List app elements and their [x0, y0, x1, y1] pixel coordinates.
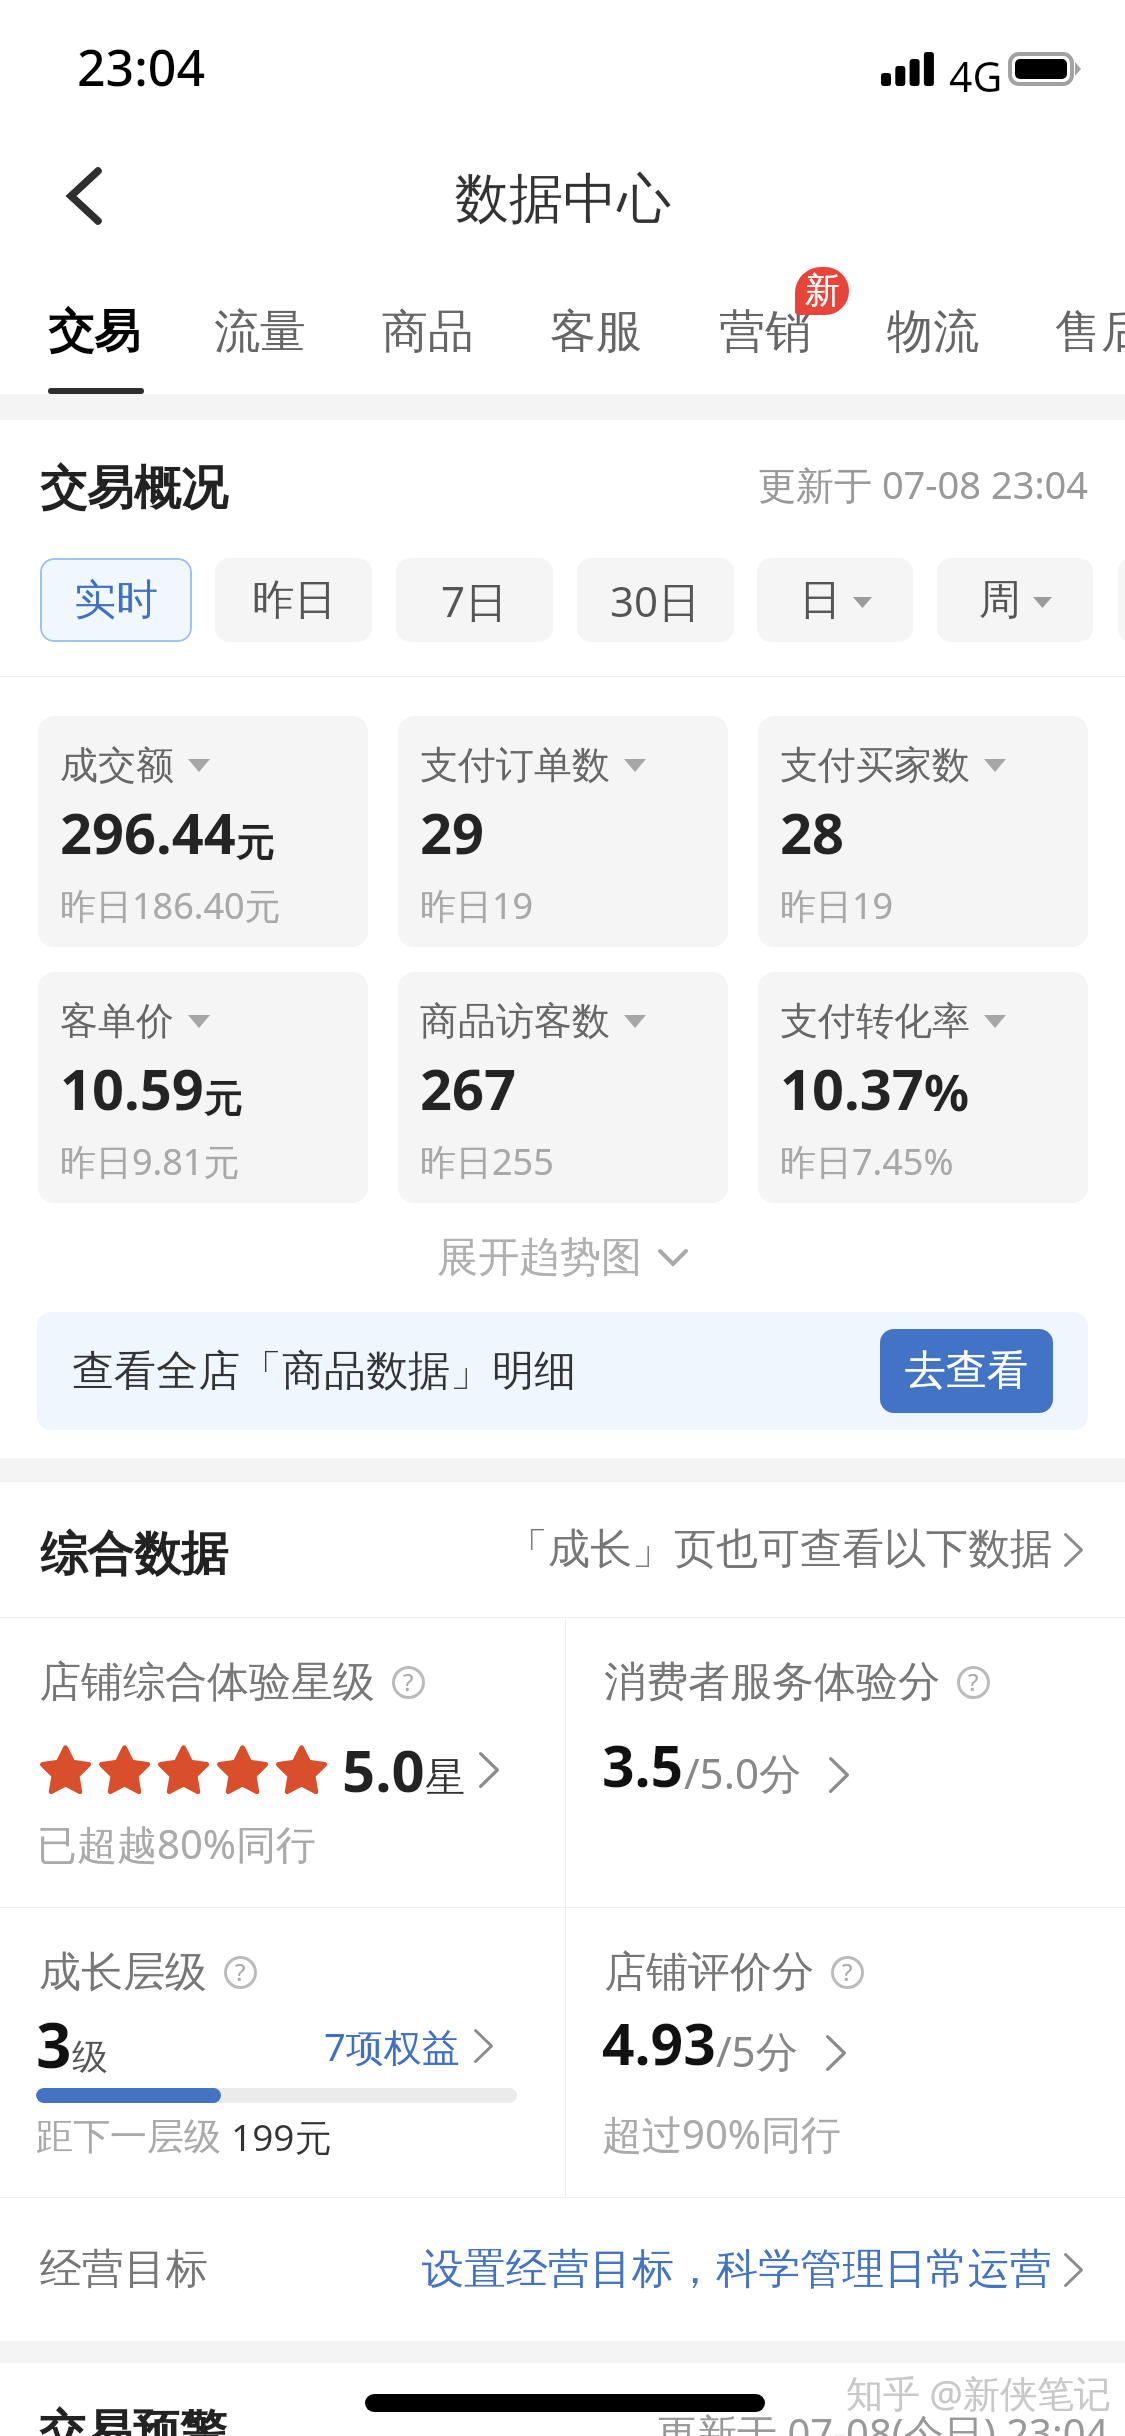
staticText: 综合数据: [40, 1525, 228, 1584]
staticText: 消费者服务体验分: [604, 1656, 940, 1709]
staticText: 营销: [719, 303, 811, 361]
button[interactable]: 售后: [1035, 265, 1125, 394]
staticText: 商品访客数: [420, 997, 610, 1045]
staticText: 4G: [949, 48, 1003, 104]
staticText: 5.0: [342, 1730, 425, 1809]
staticText: 距下一层级: [36, 2113, 221, 2160]
staticText: ?: [235, 1955, 246, 1988]
staticText: 23:04: [77, 33, 205, 101]
staticText: /5分: [716, 2022, 798, 2079]
button[interactable]: 客服: [530, 265, 667, 394]
staticText: 售后: [1055, 303, 1125, 361]
staticText: 昨日255: [420, 1137, 554, 1186]
button[interactable]: 成交额: [38, 716, 368, 947]
button[interactable]: 去查看: [880, 1329, 1053, 1413]
staticText: 商品: [382, 303, 474, 361]
staticText: 昨日9.81元: [60, 1137, 240, 1186]
staticText: 4.93: [602, 2004, 716, 2082]
staticText: 成交额: [60, 741, 174, 789]
button[interactable]: Back: [28, 147, 120, 243]
staticText: 10.59: [60, 1050, 204, 1126]
staticText: 客服: [550, 303, 642, 361]
button[interactable]: 经营目标: [0, 2198, 1125, 2341]
staticText: 交易概况: [40, 459, 228, 518]
staticText: 展开趋势图: [437, 1232, 642, 1284]
button[interactable]: 日: [757, 558, 913, 642]
staticText: 支付订单数: [420, 741, 610, 789]
button[interactable]: 交易: [28, 265, 165, 394]
staticText: 经营目标: [40, 2243, 208, 2296]
staticText: 支付转化率: [780, 997, 970, 1045]
button[interactable]: 商品访客数: [398, 972, 728, 1203]
staticText: 级: [72, 2034, 108, 2079]
staticText: 7项权益: [324, 2020, 460, 2072]
button[interactable]: 店铺评价分: [566, 1908, 1125, 2197]
staticText: 昨日19: [780, 881, 894, 930]
button[interactable]: 店铺综合体验星级: [0, 1618, 565, 1907]
staticText: 29: [420, 794, 485, 870]
staticText: 「成长」页也可查看以下数据: [506, 1523, 1052, 1576]
staticText: 日: [799, 574, 841, 627]
staticText: ?: [968, 1665, 979, 1698]
button[interactable]: 展开趋势图: [417, 1216, 708, 1300]
staticText: 3.5: [602, 1726, 684, 1804]
staticText: 7日: [441, 572, 508, 629]
staticText: 星: [425, 1752, 465, 1802]
staticText: 已超越80%同行: [37, 1816, 316, 1871]
staticText: 3: [36, 2002, 72, 2086]
button[interactable]: 支付订单数: [398, 716, 728, 947]
staticText: 昨日186.40元: [60, 881, 281, 930]
button[interactable]: 7项权益: [324, 2020, 493, 2072]
staticText: 199元: [231, 2111, 332, 2162]
staticText: 新: [805, 268, 840, 312]
button[interactable]: 消费者服务体验分: [566, 1618, 1125, 1907]
staticText: 设置经营目标，科学管理日常运营: [422, 2243, 1052, 2296]
staticText: ?: [842, 1955, 853, 1988]
staticText: 元: [204, 1075, 242, 1123]
staticText: /5.0分: [684, 1744, 801, 1801]
staticText: 店铺评价分: [604, 1946, 814, 1999]
staticText: 昨日: [252, 574, 336, 627]
staticText: 30日: [610, 572, 701, 629]
staticText: 交易预警: [39, 2403, 227, 2436]
button[interactable]: 昨日: [215, 558, 372, 642]
staticText: 28: [780, 794, 845, 870]
button[interactable]: 支付买家数: [758, 716, 1088, 947]
staticText: 数据中心: [455, 165, 671, 233]
staticText: 超过90%同行: [602, 2106, 841, 2161]
staticText: 296.44: [60, 794, 236, 870]
button[interactable]: 流量: [194, 265, 331, 394]
staticText: 支付买家数: [780, 741, 970, 789]
staticText: 更新于 07-08(今日) 23:04: [657, 2405, 1109, 2436]
staticText: 周: [979, 574, 1021, 627]
staticText: 元: [236, 819, 274, 867]
button[interactable]: 营销: [699, 265, 836, 394]
staticText: 昨日19: [420, 881, 534, 930]
button[interactable]: 30日: [577, 558, 734, 642]
staticText: 成长层级: [39, 1946, 207, 1999]
staticText: 知乎 @新侠笔记: [846, 2367, 1111, 2418]
staticText: 10.37: [780, 1050, 924, 1126]
staticText: 交易: [48, 303, 140, 361]
staticText: 去查看: [905, 1345, 1028, 1397]
button[interactable]: 周: [937, 558, 1093, 642]
staticText: 实时: [74, 574, 158, 627]
staticText: ?: [403, 1665, 414, 1698]
staticText: 店铺综合体验星级: [39, 1656, 375, 1709]
button[interactable]: 「成长」页也可查看以下数据: [506, 1523, 1083, 1576]
button[interactable]: 实时: [40, 558, 192, 642]
button[interactable]: 7日: [396, 558, 553, 642]
button[interactable]: 查看全店「商品数据」明细: [37, 1312, 1088, 1430]
staticText: 流量: [214, 303, 306, 361]
staticText: 昨日7.45%: [780, 1137, 954, 1186]
staticText: %: [924, 1058, 970, 1126]
button[interactable]: 物流: [867, 265, 1004, 394]
staticText: 客单价: [60, 997, 174, 1045]
button[interactable]: 支付转化率: [758, 972, 1088, 1203]
staticText: 物流: [887, 303, 979, 361]
button[interactable]: 成长层级: [0, 1908, 565, 2197]
staticText: 更新于 07-08 23:04: [758, 458, 1089, 510]
staticText: 查看全店「商品数据」明细: [72, 1345, 576, 1398]
button[interactable]: 商品: [362, 265, 499, 394]
button[interactable]: 客单价: [38, 972, 368, 1203]
